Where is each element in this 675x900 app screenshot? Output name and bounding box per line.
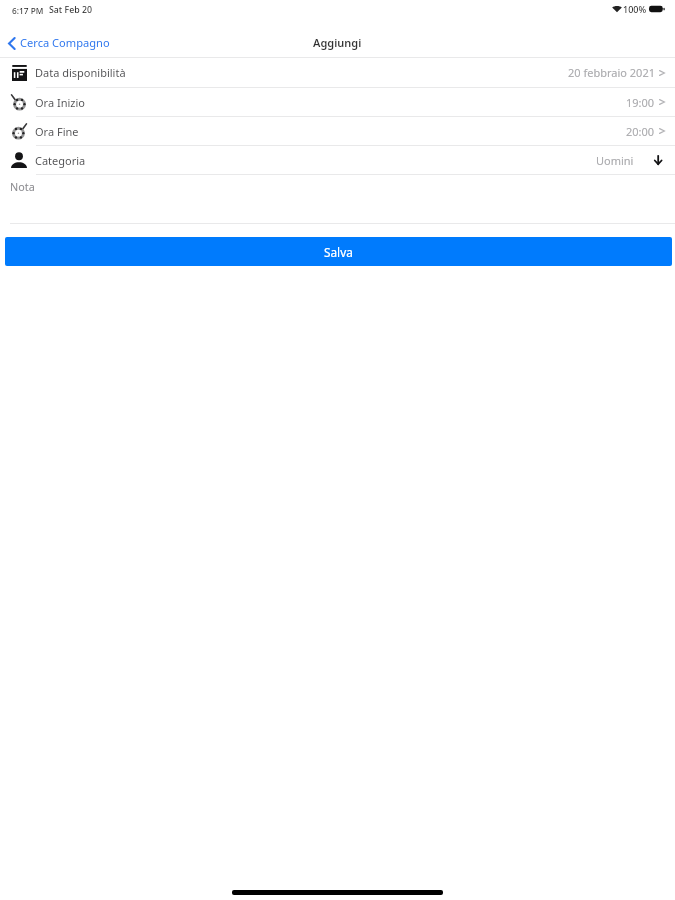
other: Expand category xyxy=(654,155,665,165)
staticText: 20 febbraio 2021 xyxy=(568,65,655,80)
staticText: Categoria xyxy=(35,153,86,168)
staticText: 19:00 xyxy=(626,95,655,110)
staticText: 6:17 PM xyxy=(12,5,44,16)
button[interactable]: Salva xyxy=(5,237,672,266)
staticText: Cerca Compagno xyxy=(20,35,110,50)
staticText: Salva xyxy=(324,244,353,260)
staticText: 100% xyxy=(623,3,647,15)
button[interactable]: Ora Inizio xyxy=(0,88,675,116)
staticText: Nota xyxy=(10,179,35,194)
staticText: Data disponibilità xyxy=(35,65,126,80)
button[interactable]: Nota xyxy=(0,175,675,223)
button[interactable]: Categoria xyxy=(0,146,675,174)
staticText: Uomini xyxy=(596,153,634,168)
staticText: Ora Fine xyxy=(35,124,79,139)
staticText: 20:00 xyxy=(626,124,655,139)
staticText: Aggiungi xyxy=(313,35,362,50)
button[interactable]: Data disponibilità xyxy=(0,58,675,87)
staticText: Ora Inizio xyxy=(35,95,85,110)
button[interactable]: Ora Fine xyxy=(0,117,675,145)
staticText: Sat Feb 20 xyxy=(49,4,93,16)
button[interactable]: Cerca Compagno xyxy=(0,30,120,55)
